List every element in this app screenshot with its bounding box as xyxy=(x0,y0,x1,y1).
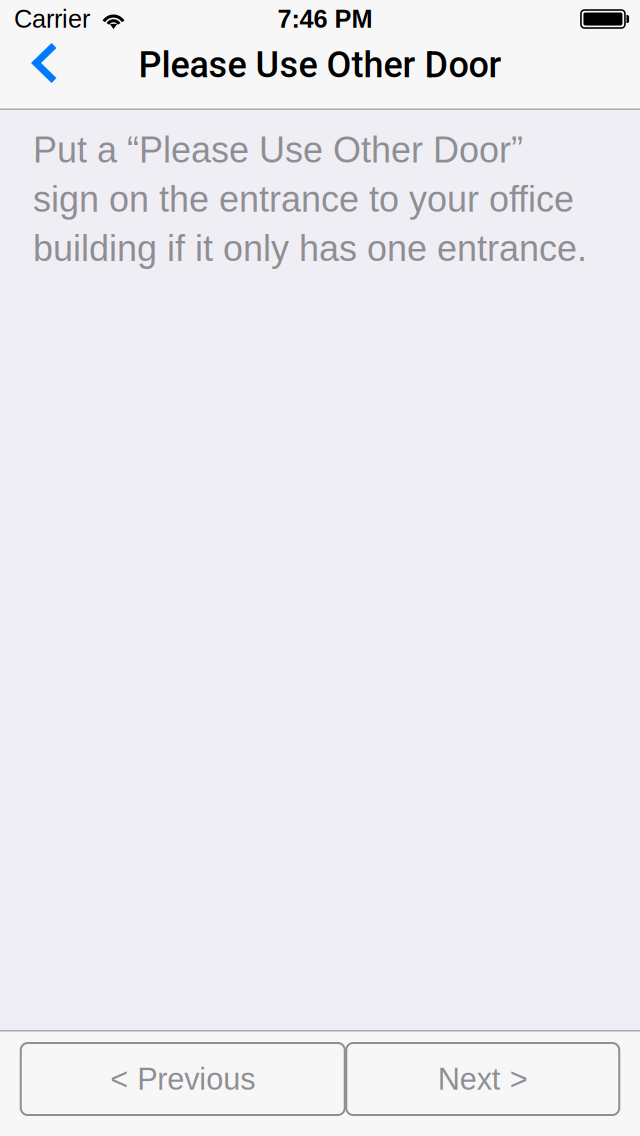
staticText: Put a “Please Use Other Door” xyxy=(33,130,523,170)
staticText: < Previous xyxy=(110,1062,255,1096)
staticText: Next > xyxy=(438,1062,528,1096)
staticText: Please Use Other Door xyxy=(138,44,501,86)
button[interactable]: Next > xyxy=(346,1043,619,1115)
staticText: 7:46 PM xyxy=(277,5,372,33)
staticText: sign on the entrance to your office xyxy=(33,179,574,219)
staticText: building if it only has one entrance. xyxy=(33,228,587,269)
staticText: Carrier xyxy=(14,5,90,33)
button[interactable]: Back xyxy=(0,38,73,110)
button[interactable]: < Previous xyxy=(21,1043,345,1115)
